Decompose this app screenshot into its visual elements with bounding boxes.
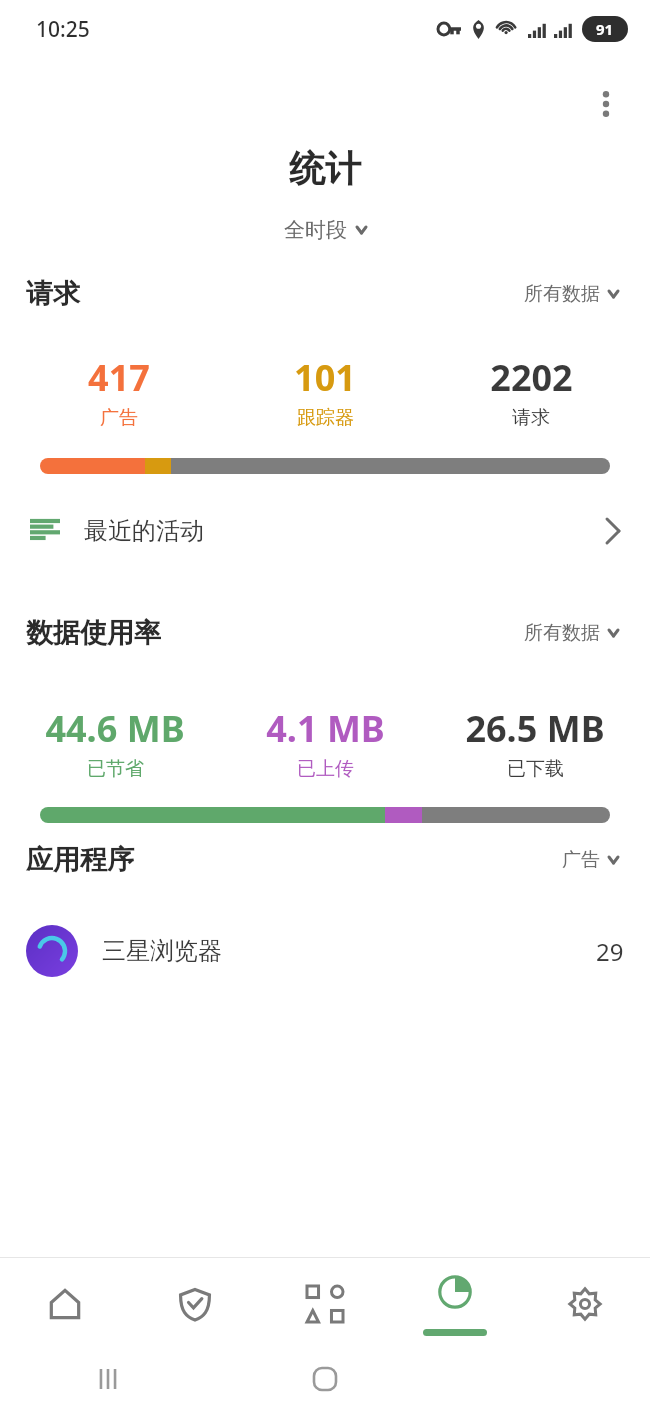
- staticText: 已下载: [507, 757, 564, 781]
- button[interactable]: Home: [216, 1350, 433, 1408]
- staticText: 10:25: [36, 15, 90, 44]
- staticText: 所有数据: [524, 282, 600, 306]
- staticText: 请求: [512, 406, 550, 430]
- button[interactable]: Protection: [130, 1258, 260, 1350]
- button[interactable]: 101: [222, 353, 428, 430]
- staticText: 44.6 MB: [45, 704, 185, 753]
- button[interactable]: 广告: [556, 844, 624, 876]
- staticText: 101: [294, 353, 356, 402]
- button[interactable]: 44.6 MB: [10, 704, 220, 781]
- staticText: 广告: [562, 848, 600, 872]
- button[interactable]: Apps: [260, 1258, 390, 1350]
- staticText: 所有数据: [524, 621, 600, 645]
- staticText: 请求: [26, 277, 80, 311]
- button[interactable]: 三星浏览器: [0, 921, 650, 981]
- button[interactable]: Settings: [520, 1258, 650, 1350]
- staticText: 已节省: [87, 757, 144, 781]
- staticText: 全时段: [284, 217, 347, 243]
- staticText: 29: [596, 935, 624, 968]
- staticText: 统计: [289, 146, 361, 191]
- staticText: 26.5 MB: [465, 704, 605, 753]
- button[interactable]: 所有数据: [518, 278, 624, 310]
- button[interactable]: Recents: [0, 1350, 216, 1408]
- staticText: 最近的活动: [84, 516, 204, 546]
- staticText: 417: [88, 353, 150, 402]
- button[interactable]: 最近的活动: [0, 496, 650, 566]
- button[interactable]: More options: [584, 84, 628, 124]
- button[interactable]: 2202: [428, 353, 634, 430]
- staticText: 三星浏览器: [102, 936, 222, 966]
- staticText: 4.1 MB: [266, 704, 385, 753]
- staticText: 数据使用率: [26, 616, 161, 650]
- staticText: 2202: [490, 353, 573, 402]
- button[interactable]: 所有数据: [518, 617, 624, 649]
- staticText: 已上传: [297, 757, 354, 781]
- staticText: 广告: [100, 406, 138, 430]
- button[interactable]: 417: [16, 353, 222, 430]
- button[interactable]: 4.1 MB: [220, 704, 430, 781]
- staticText: 91: [596, 19, 614, 39]
- button[interactable]: 26.5 MB: [430, 704, 640, 781]
- staticText: 跟踪器: [297, 406, 354, 430]
- staticText: 应用程序: [26, 843, 134, 877]
- button[interactable]: Statistics: [390, 1258, 520, 1350]
- button[interactable]: 全时段: [276, 213, 374, 247]
- button[interactable]: Home: [0, 1258, 130, 1350]
